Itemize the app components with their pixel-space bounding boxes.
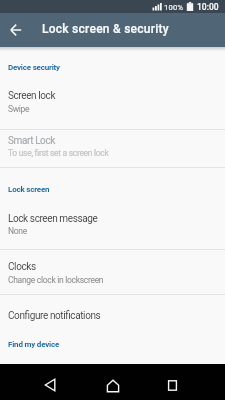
button[interactable] (101, 374, 125, 398)
staticText: Device security (8, 63, 60, 72)
button[interactable] (38, 374, 62, 398)
staticText: 10:00 (197, 2, 219, 12)
button[interactable]: Screen lock (0, 80, 225, 129)
staticText: Change clock in lockscreen (8, 275, 104, 285)
staticText: Swipe (8, 104, 30, 114)
button[interactable]: Clocks (0, 250, 225, 294)
button[interactable]: Smart Lock (0, 130, 225, 167)
staticText: Lock screen & security (42, 22, 169, 36)
staticText: Smart Lock (8, 135, 55, 147)
button[interactable]: Lock screen message (0, 200, 225, 249)
staticText: Screen lock (8, 90, 56, 102)
staticText: Configure notifications (8, 310, 101, 322)
button[interactable]: Configure notifications (0, 295, 225, 333)
staticText: Lock screen message (8, 213, 98, 225)
staticText: Clocks (8, 261, 36, 273)
staticText: None (8, 226, 27, 236)
button[interactable] (4, 18, 28, 42)
staticText: Lock screen (8, 185, 50, 194)
staticText: To use, first set a screen lock (8, 148, 109, 158)
button[interactable] (160, 374, 184, 398)
staticText: 100% (164, 3, 184, 12)
staticText: Find my device (8, 340, 60, 349)
